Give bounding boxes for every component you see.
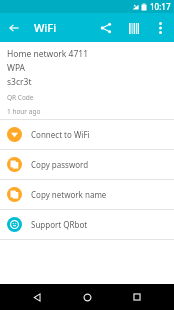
button[interactable]: More options <box>148 16 172 40</box>
button[interactable]: Copy network name <box>0 180 174 209</box>
button[interactable]: Support QRbot <box>0 210 174 239</box>
staticText: Copy network name <box>31 189 107 200</box>
staticText: Copy password <box>31 159 89 170</box>
button[interactable]: Back <box>0 14 28 42</box>
button[interactable]: Recent apps <box>124 284 150 310</box>
button[interactable]: Connect to WiFi <box>0 120 174 149</box>
staticText: WPA <box>7 62 26 74</box>
button[interactable]: Back <box>24 284 50 310</box>
staticText: s3cr3t <box>7 76 32 88</box>
staticText: 1 hour ago <box>7 107 41 116</box>
staticText: QR Code <box>7 93 34 102</box>
button[interactable]: Share <box>92 14 120 42</box>
button[interactable]: Barcode <box>120 14 148 42</box>
staticText: 10:17 <box>150 1 171 12</box>
staticText: WiFi <box>34 20 57 35</box>
staticText: Connect to WiFi <box>31 129 90 140</box>
button[interactable]: Copy password <box>0 150 174 179</box>
staticText: Support QRbot <box>31 219 88 230</box>
staticText: Home network 4711 <box>7 48 89 60</box>
button[interactable]: Home <box>74 284 100 310</box>
